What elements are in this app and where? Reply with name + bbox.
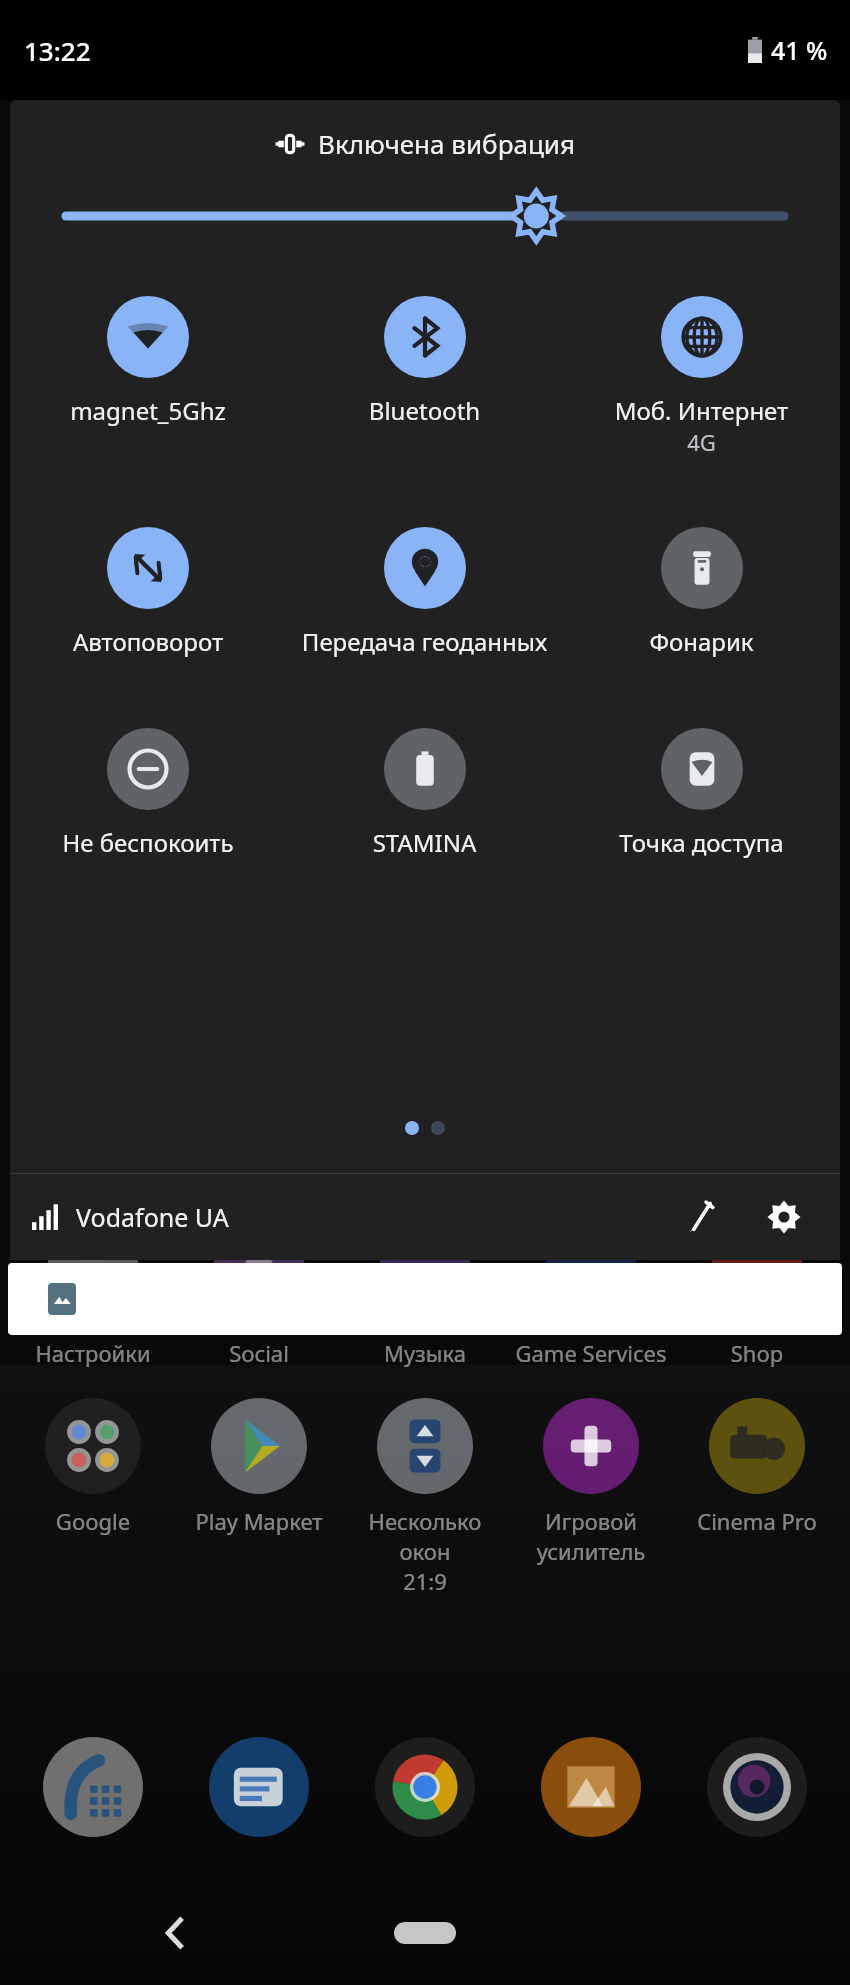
- button[interactable]: Bluetooth: [286, 292, 563, 431]
- button[interactable]: Settings: [750, 1183, 818, 1251]
- staticText: Play Маркет: [176, 1506, 342, 1536]
- button[interactable]: chrome: [375, 1737, 475, 1837]
- button[interactable]: magnet_5Ghz: [10, 292, 286, 431]
- staticText: Vodafone UA: [76, 1200, 229, 1234]
- staticText: Game Services: [508, 1338, 674, 1368]
- staticText: Передача геоданных: [290, 625, 559, 658]
- button[interactable]: Google: [10, 1398, 176, 1536]
- button[interactable]: Back: [140, 1898, 210, 1968]
- button[interactable]: Автоповорот: [10, 523, 286, 662]
- staticText: Включена вибрация: [318, 126, 575, 161]
- button[interactable]: Фонарик: [563, 523, 840, 662]
- button[interactable]: Game Services: [508, 1230, 674, 1368]
- button[interactable]: Brightness: [66, 186, 784, 246]
- button[interactable]: Музыка: [342, 1230, 508, 1368]
- button[interactable]: Social: [176, 1230, 342, 1368]
- staticText: усилитель: [508, 1536, 674, 1566]
- staticText: Моб. Интернет: [567, 394, 836, 427]
- staticText: STAMINA: [290, 826, 559, 859]
- staticText: Автоповорот: [14, 625, 282, 658]
- button[interactable]: sms: [209, 1737, 309, 1837]
- button[interactable]: Моб. Интернет: [563, 292, 840, 461]
- button[interactable]: Home: [375, 1903, 475, 1963]
- button[interactable]: Несколько окон: [342, 1398, 508, 1596]
- button[interactable]: Включена вибрация: [10, 126, 840, 161]
- staticText: Bluetooth: [290, 394, 559, 427]
- button[interactable]: STAMINA: [286, 724, 563, 863]
- staticText: Фонарик: [567, 625, 836, 658]
- button[interactable]: Передача геоданных: [286, 523, 563, 662]
- staticText: Cinema Pro: [674, 1506, 840, 1536]
- button[interactable]: [8, 1263, 842, 1335]
- button[interactable]: phone: [43, 1737, 143, 1837]
- button[interactable]: Cinema Pro: [674, 1398, 840, 1536]
- button[interactable]: Play Маркет: [176, 1398, 342, 1536]
- staticText: magnet_5Ghz: [14, 394, 282, 427]
- staticText: 21:9: [342, 1566, 508, 1596]
- staticText: Настройки: [10, 1338, 176, 1368]
- staticText: Игровой: [508, 1506, 674, 1536]
- staticText: Несколько окон: [342, 1506, 508, 1566]
- staticText: Точка доступа: [567, 826, 836, 859]
- button[interactable]: Не беспокоить: [10, 724, 286, 863]
- staticText: 41 %: [771, 33, 828, 67]
- button[interactable]: Точка доступа: [563, 724, 840, 863]
- staticText: Не беспокоить: [14, 826, 282, 859]
- button[interactable]: gallery: [541, 1737, 641, 1837]
- button[interactable]: Edit: [668, 1183, 736, 1251]
- staticText: 13:22: [24, 33, 91, 68]
- button[interactable]: Настройки: [10, 1230, 176, 1368]
- staticText: Google: [10, 1506, 176, 1536]
- staticText: Social: [176, 1338, 342, 1368]
- staticText: Музыка: [342, 1338, 508, 1368]
- button[interactable]: camera: [707, 1737, 807, 1837]
- button[interactable]: Игровой: [508, 1398, 674, 1566]
- staticText: 4G: [563, 427, 840, 457]
- button[interactable]: Shop: [674, 1230, 840, 1368]
- staticText: Shop: [674, 1338, 840, 1368]
